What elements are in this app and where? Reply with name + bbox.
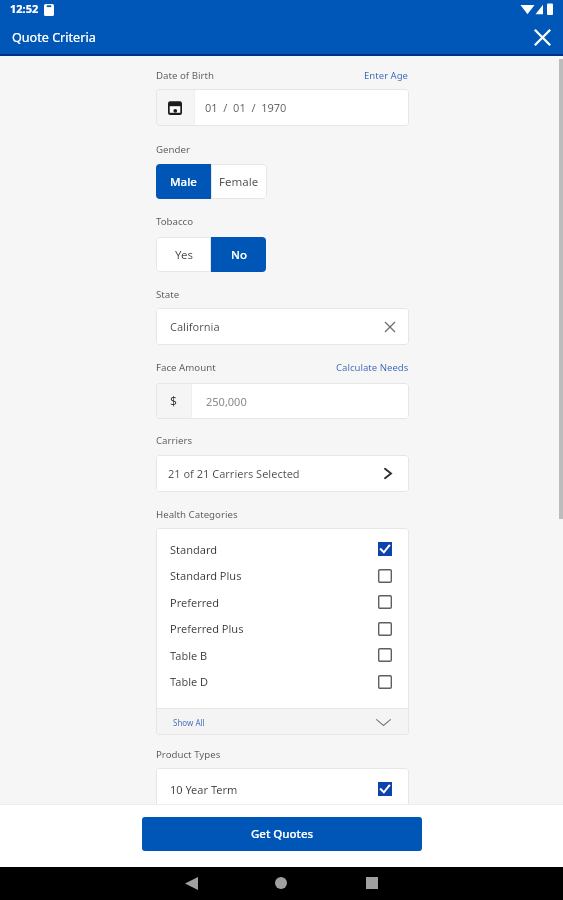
button[interactable]: 01 / 01 / 1970 [156, 89, 409, 126]
button[interactable]: Preferred [156, 589, 409, 615]
staticText: $ [170, 393, 177, 409]
button[interactable]: Male [156, 164, 211, 199]
button[interactable]: Get Quotes [142, 817, 422, 851]
staticText: Preferred [170, 595, 378, 610]
staticText: Table D [170, 674, 378, 689]
staticText: Health Categories [156, 508, 238, 521]
staticText: Face Amount [156, 361, 216, 374]
button[interactable]: $ [156, 383, 409, 419]
button[interactable]: Clear state [370, 308, 409, 345]
staticText: Preferred Plus [170, 621, 378, 636]
staticText: 12:52 [10, 1, 39, 16]
staticText: Male [170, 174, 197, 190]
staticText: California [170, 319, 370, 334]
staticText: 250,000 [206, 394, 247, 409]
button[interactable]: No [211, 237, 266, 272]
button[interactable]: Table D [156, 668, 409, 695]
button[interactable]: Standard Plus [156, 562, 409, 589]
button[interactable]: Female [211, 164, 267, 199]
staticText: 10 Year Term [170, 782, 378, 797]
button[interactable]: Enter Age [364, 69, 409, 82]
button[interactable]: Preferred Plus [156, 615, 409, 642]
button[interactable]: California [156, 308, 409, 345]
button[interactable]: Standard [156, 536, 409, 562]
button[interactable]: Back [178, 870, 204, 896]
staticText: Yes [175, 247, 193, 263]
button[interactable]: Show All [156, 709, 409, 735]
staticText: 01 / 01 / 1970 [205, 100, 287, 115]
button[interactable]: Home [268, 870, 294, 896]
button[interactable]: Recent apps [359, 870, 385, 896]
button[interactable]: Calculate Needs [336, 361, 409, 374]
staticText: Standard [170, 542, 378, 557]
staticText: Gender [156, 143, 190, 156]
button[interactable]: Yes [156, 237, 211, 272]
staticText: Show All [173, 717, 358, 728]
button[interactable]: Close [528, 23, 556, 51]
staticText: Female [219, 174, 259, 190]
staticText: State [156, 288, 180, 301]
button[interactable]: Table B [156, 642, 409, 668]
staticText: No [231, 247, 247, 263]
button[interactable]: 21 of 21 Carriers Selected [156, 455, 409, 492]
staticText: Standard Plus [170, 568, 378, 583]
staticText: Get Quotes [251, 826, 314, 842]
staticText: Carriers [156, 434, 193, 447]
staticText: Quote Criteria [12, 29, 96, 46]
staticText: Tobacco [156, 215, 194, 228]
staticText: Product Types [156, 748, 221, 761]
staticText: 21 of 21 Carriers Selected [168, 466, 366, 481]
staticText: Table B [170, 648, 378, 663]
staticText: Date of Birth [156, 69, 214, 82]
button[interactable]: 10 Year Term [156, 776, 409, 802]
